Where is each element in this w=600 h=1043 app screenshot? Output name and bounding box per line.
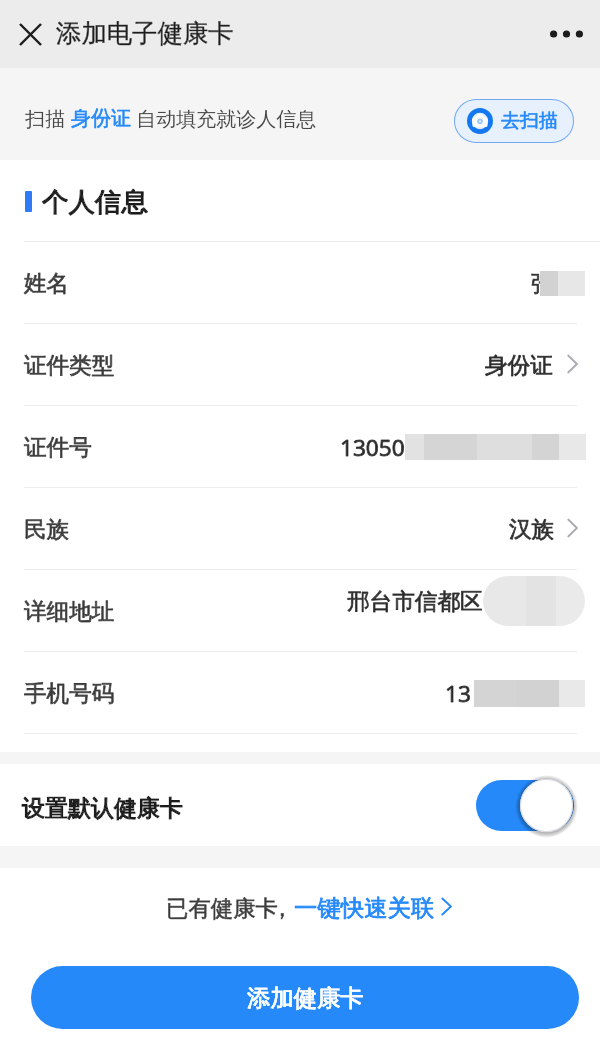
button[interactable]: 姓名 <box>0 242 600 324</box>
staticText: 姓名 <box>24 269 70 297</box>
staticText: 汉族 <box>509 515 555 543</box>
button[interactable]: 去扫描 <box>454 99 574 143</box>
staticText: 扫描 <box>25 105 71 132</box>
staticText: 已有健康卡 <box>166 894 278 922</box>
staticText: 汉族 <box>509 515 555 543</box>
staticText: 一键快速关联 <box>294 893 435 922</box>
staticText: 身份证 <box>485 351 553 379</box>
staticText: 13050 <box>340 432 405 463</box>
staticText: 邢台市信都区 <box>347 587 483 615</box>
staticText: 13050 <box>340 432 405 463</box>
staticText: 添加电子健康卡 <box>56 18 234 50</box>
button[interactable]: 添加健康卡 <box>31 966 579 1029</box>
staticText: 手机号码 <box>24 679 115 707</box>
staticText: 民族 <box>24 515 70 543</box>
staticText: 13 <box>445 678 471 709</box>
staticText: 已有健康卡 <box>166 894 278 922</box>
staticText: 证件号 <box>24 433 92 461</box>
staticText: 身份证 <box>485 351 553 379</box>
staticText: 张 <box>531 269 540 297</box>
staticText: 设置默认健康卡 <box>22 794 183 823</box>
button[interactable]: Close <box>8 12 52 56</box>
staticText: ， <box>271 894 287 922</box>
staticText: 添加电子健康卡 <box>56 18 234 50</box>
staticText: 手机号码 <box>24 679 115 707</box>
staticText: 姓名 <box>24 269 70 297</box>
staticText: 证件号 <box>24 433 92 461</box>
staticText: 证件类型 <box>24 351 115 379</box>
staticText: 一键快速关联 <box>294 893 435 922</box>
staticText: 详细地址 <box>24 597 115 625</box>
staticText: 详细地址 <box>24 597 115 625</box>
button[interactable]: 手机号码 <box>0 652 600 734</box>
button[interactable]: 证件类型 <box>0 324 600 406</box>
staticText: 添加健康卡 <box>247 983 364 1012</box>
button[interactable]: 民族 <box>0 488 600 570</box>
button[interactable]: 详细地址 <box>0 570 600 652</box>
button[interactable]: 证件号 <box>0 406 600 488</box>
button[interactable]: More options <box>542 10 590 58</box>
staticText: 个人信息 <box>42 185 148 218</box>
staticText: 添加健康卡 <box>247 983 364 1012</box>
staticText: 自动填充就诊人信息 <box>131 105 317 132</box>
button[interactable]: Set as default health card <box>475 778 575 833</box>
staticText: 去扫描 <box>501 109 558 133</box>
staticText: 身份证 <box>71 106 131 131</box>
staticText: 设置默认健康卡 <box>22 794 183 823</box>
staticText: 13 <box>445 678 471 709</box>
staticText: 个人信息 <box>42 185 148 218</box>
staticText: ， <box>271 894 287 922</box>
staticText: 身份证 <box>71 106 131 131</box>
staticText: 张 <box>531 269 540 297</box>
staticText: 邢台市信都区 <box>347 587 483 615</box>
staticText: 民族 <box>24 515 70 543</box>
button[interactable]: 已有健康卡 <box>166 893 452 922</box>
staticText: 去扫描 <box>501 109 558 133</box>
staticText: 证件类型 <box>24 351 115 379</box>
